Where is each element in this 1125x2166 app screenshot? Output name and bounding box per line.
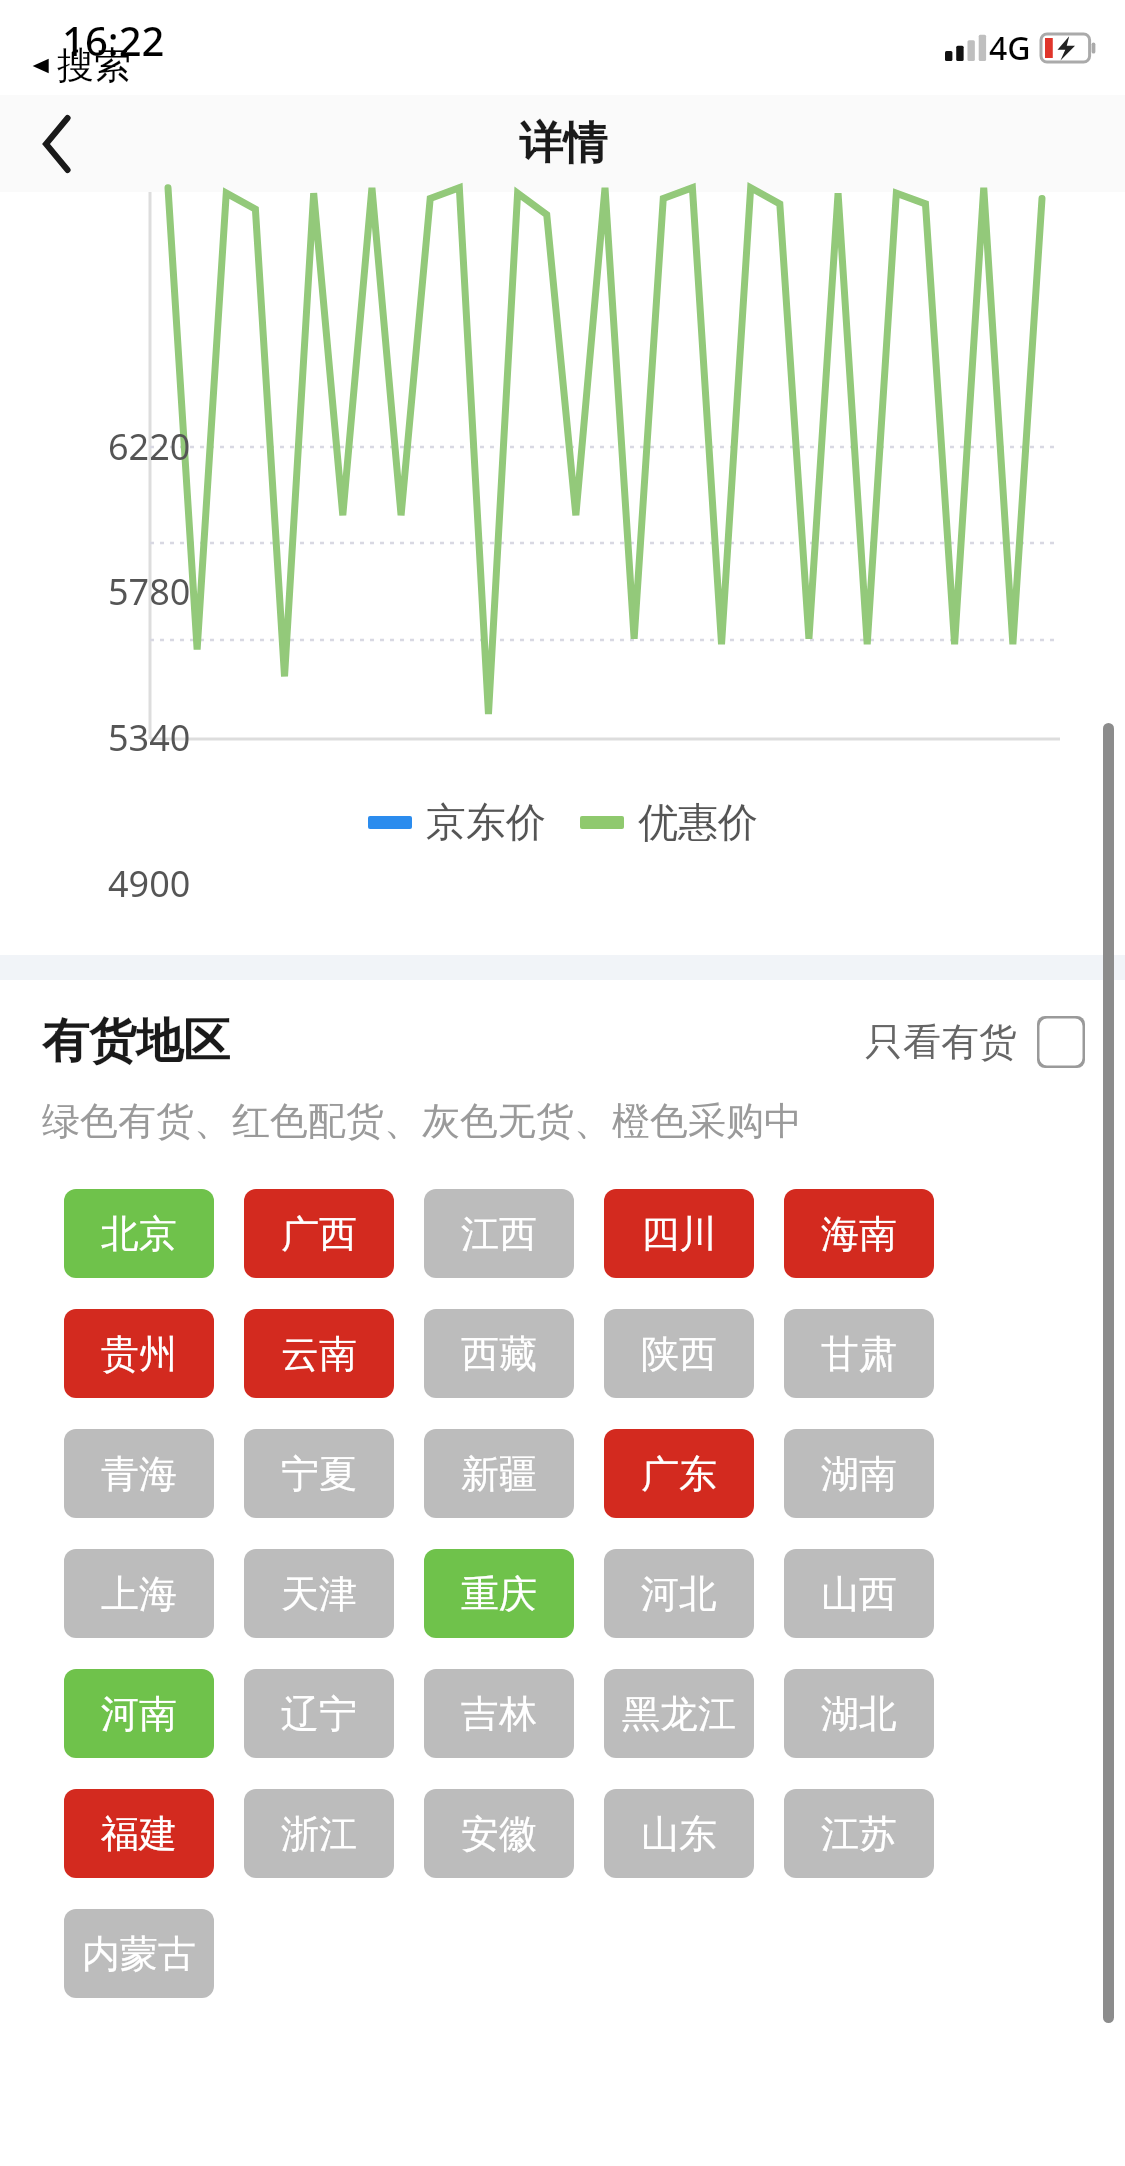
button[interactable]: 返回 <box>22 108 94 180</box>
button[interactable]: 湖北 <box>784 1669 934 1758</box>
staticText: 青海 <box>101 1450 177 1498</box>
button[interactable]: 山西 <box>784 1549 934 1638</box>
button[interactable]: 内蒙古 <box>64 1909 214 1998</box>
button[interactable]: 青海 <box>64 1429 214 1518</box>
staticText: 西藏 <box>461 1330 537 1378</box>
staticText: 河北 <box>641 1570 717 1618</box>
staticText: 6220 <box>108 422 191 471</box>
staticText: 宁夏 <box>281 1450 357 1498</box>
button[interactable]: 河北 <box>604 1549 754 1638</box>
button[interactable]: 辽宁 <box>244 1669 394 1758</box>
staticText: 重庆 <box>461 1570 537 1618</box>
staticText: 只看有货 <box>865 1018 1017 1066</box>
button[interactable]: 山东 <box>604 1789 754 1878</box>
staticText: 江西 <box>461 1210 537 1258</box>
staticText: 海南 <box>821 1210 897 1258</box>
staticText: 上海 <box>101 1570 177 1618</box>
staticText: 天津 <box>281 1570 357 1618</box>
button[interactable]: 天津 <box>244 1549 394 1638</box>
staticText: 5780 <box>108 567 191 616</box>
staticText: 搜索 <box>57 42 131 89</box>
button[interactable]: 宁夏 <box>244 1429 394 1518</box>
button[interactable]: 重庆 <box>424 1549 574 1638</box>
button[interactable]: 陕西 <box>604 1309 754 1398</box>
staticText: 甘肃 <box>821 1330 897 1378</box>
staticText: 16:22 <box>62 13 165 67</box>
staticText: 内蒙古 <box>82 1930 196 1978</box>
button[interactable]: 广东 <box>604 1429 754 1518</box>
button[interactable]: 上海 <box>64 1549 214 1638</box>
staticText: 广西 <box>281 1210 357 1258</box>
staticText: 云南 <box>281 1330 357 1378</box>
staticText: 安徽 <box>461 1810 537 1858</box>
button[interactable]: 贵州 <box>64 1309 214 1398</box>
staticText: 贵州 <box>101 1330 177 1378</box>
staticText: 详情 <box>519 116 607 171</box>
button[interactable]: 只看有货 <box>865 1016 1085 1068</box>
staticText: 福建 <box>101 1810 177 1858</box>
staticText: 4G <box>989 26 1031 70</box>
button[interactable]: 安徽 <box>424 1789 574 1878</box>
staticText: 有货地区 <box>42 1012 230 1071</box>
staticText: 河南 <box>101 1690 177 1738</box>
staticText: 辽宁 <box>281 1690 357 1738</box>
button[interactable]: 湖南 <box>784 1429 934 1518</box>
button[interactable]: 海南 <box>784 1189 934 1278</box>
button[interactable]: 浙江 <box>244 1789 394 1878</box>
button[interactable]: 北京 <box>64 1189 214 1278</box>
staticText: 4900 <box>108 859 191 908</box>
staticText: 京东价 <box>426 797 546 847</box>
button[interactable]: 广西 <box>244 1189 394 1278</box>
staticText: 浙江 <box>281 1810 357 1858</box>
button[interactable]: 黑龙江 <box>604 1669 754 1758</box>
button[interactable]: 西藏 <box>424 1309 574 1398</box>
staticText: 山东 <box>641 1810 717 1858</box>
button[interactable]: 福建 <box>64 1789 214 1878</box>
staticText: 吉林 <box>461 1690 537 1738</box>
staticText: 四川 <box>641 1210 717 1258</box>
staticText: 5340 <box>108 713 191 762</box>
staticText: 新疆 <box>461 1450 537 1498</box>
staticText: 北京 <box>101 1210 177 1258</box>
button[interactable]: 江西 <box>424 1189 574 1278</box>
staticText: 优惠价 <box>638 797 758 847</box>
button[interactable]: 云南 <box>244 1309 394 1398</box>
staticText: 山西 <box>821 1570 897 1618</box>
button[interactable]: 四川 <box>604 1189 754 1278</box>
button[interactable]: 新疆 <box>424 1429 574 1518</box>
button[interactable]: 江苏 <box>784 1789 934 1878</box>
staticText: 陕西 <box>641 1330 717 1378</box>
staticText: 湖南 <box>821 1450 897 1498</box>
staticText: 绿色有货、红色配货、灰色无货、橙色采购中 <box>42 1097 802 1145</box>
staticText: 黑龙江 <box>622 1690 736 1738</box>
button[interactable]: 吉林 <box>424 1669 574 1758</box>
staticText: 广东 <box>641 1450 717 1498</box>
button[interactable]: 河南 <box>64 1669 214 1758</box>
staticText: 湖北 <box>821 1690 897 1738</box>
staticText: 江苏 <box>821 1810 897 1858</box>
button[interactable]: 甘肃 <box>784 1309 934 1398</box>
